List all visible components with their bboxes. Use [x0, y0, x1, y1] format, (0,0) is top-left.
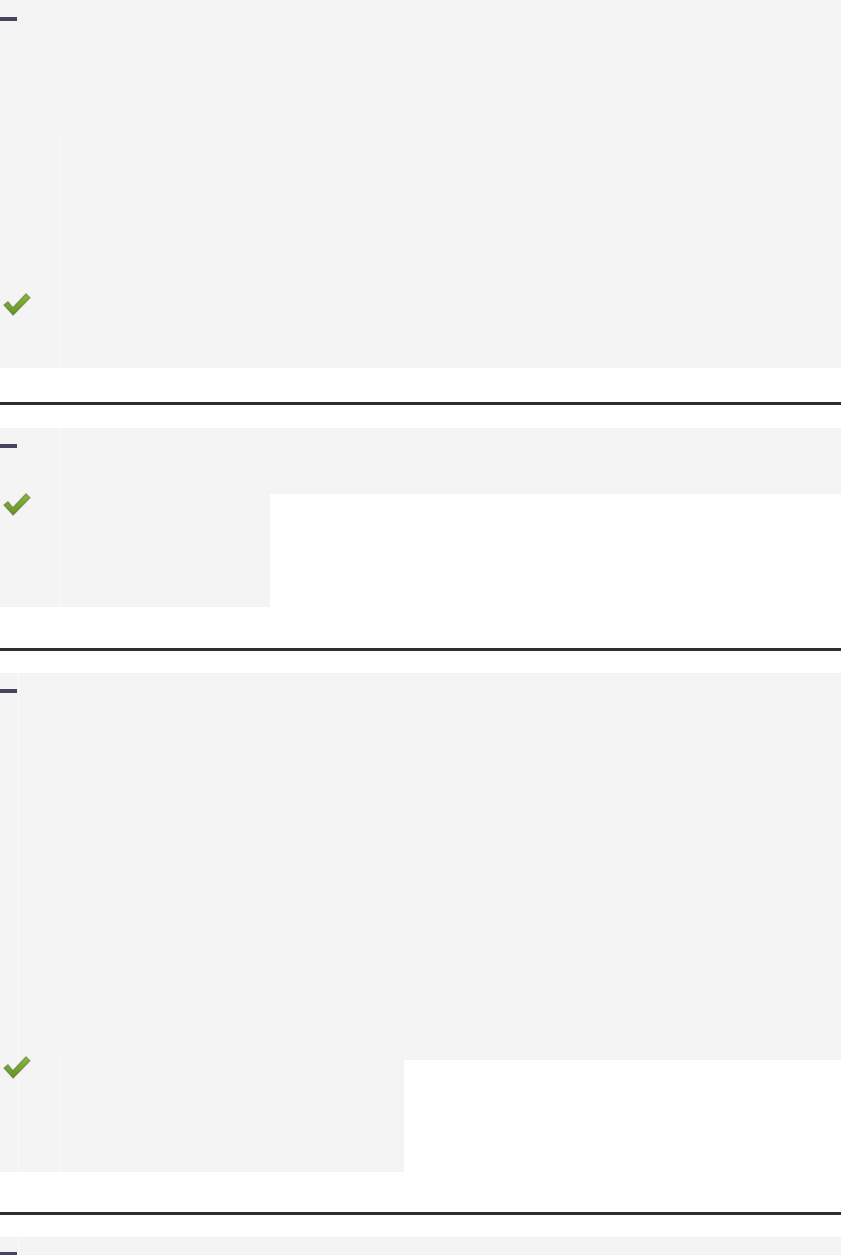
button[interactable]: Completed	[2, 290, 32, 320]
button[interactable]: Completed	[2, 1053, 32, 1083]
button[interactable]	[0, 494, 270, 607]
button[interactable]	[0, 1237, 841, 1255]
button[interactable]	[0, 1060, 404, 1172]
button[interactable]	[0, 0, 841, 368]
button[interactable]: Completed	[2, 490, 32, 520]
button[interactable]	[0, 428, 841, 494]
